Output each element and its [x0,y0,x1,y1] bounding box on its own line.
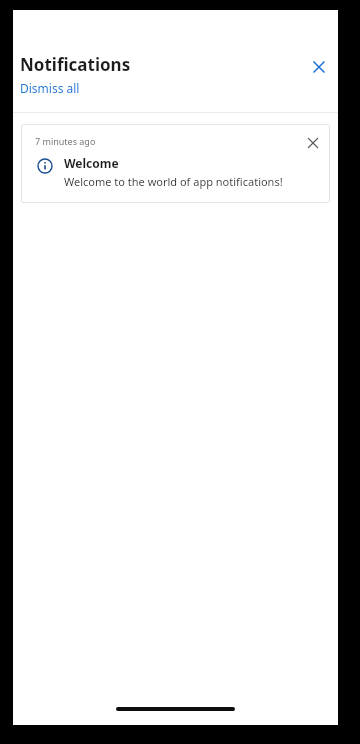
button[interactable]: Close notifications [306,54,332,80]
button[interactable]: Dismiss notification [303,133,323,153]
staticText: Welcome to the world of app notification… [64,174,283,189]
button[interactable]: Dismiss all [20,80,80,96]
staticText: 7 minutes ago [35,135,303,147]
staticText: Welcome [64,155,119,171]
staticText: Dismiss all [20,80,80,96]
staticText: Notifications [20,53,131,76]
button[interactable]: 7 minutes ago [21,124,330,203]
